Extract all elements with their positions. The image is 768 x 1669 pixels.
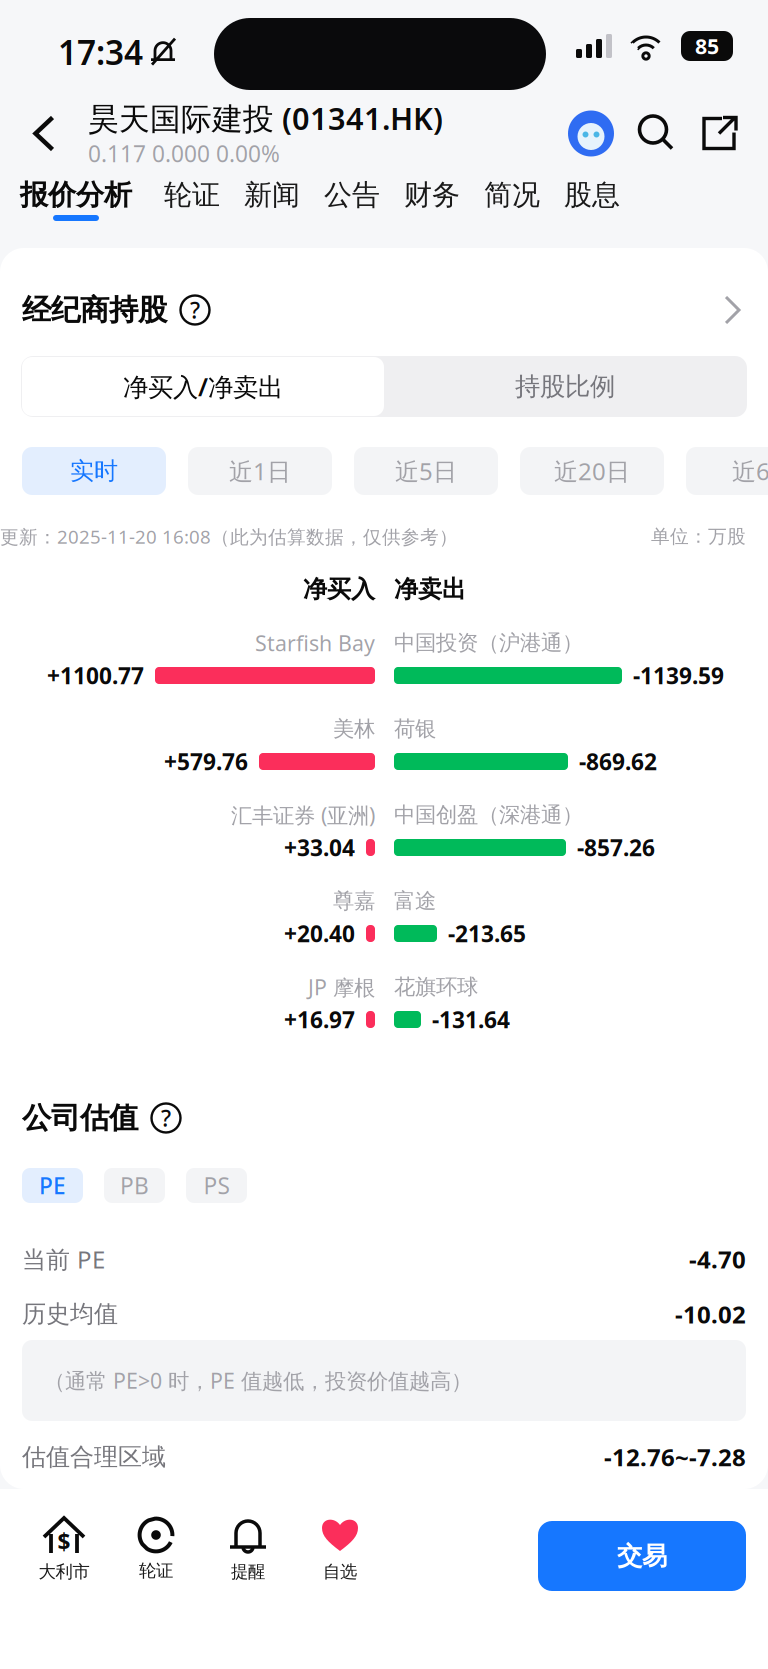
button[interactable]: 持股比例 — [384, 357, 746, 416]
button[interactable]: 近20日 — [520, 447, 664, 495]
staticText: 当前 PE — [22, 1243, 105, 1275]
button[interactable]: 提醒 — [202, 1497, 294, 1615]
staticText: 股息 — [564, 178, 620, 212]
staticText: 昊天国际建投 (01341.HK) — [88, 98, 443, 138]
staticText: 公司估值 — [22, 1100, 138, 1136]
button[interactable]: 轮证 — [152, 175, 232, 215]
button[interactable]: Share — [700, 113, 740, 153]
button[interactable]: PE — [22, 1168, 83, 1203]
staticText: -4.70 — [689, 1243, 746, 1275]
button[interactable]: Back — [0, 92, 88, 175]
staticText: -869.62 — [579, 746, 657, 776]
staticText: 经纪商持股 — [22, 292, 167, 328]
staticText: ? — [161, 1103, 171, 1133]
staticText: +16.97 — [284, 1004, 355, 1034]
button[interactable]: More — [723, 295, 742, 325]
staticText: 近5日 — [395, 455, 457, 487]
staticText: 新闻 — [244, 178, 300, 212]
staticText: 简况 — [484, 178, 540, 212]
staticText: 荷银 — [394, 716, 436, 742]
staticText: 自选 — [323, 1561, 357, 1582]
staticText: PS — [203, 1170, 229, 1200]
staticText: 0.117 0.000 0.00% — [88, 138, 280, 169]
staticText: 公告 — [324, 178, 380, 212]
button[interactable]: Search — [636, 113, 676, 153]
staticText: 花旗环球 — [394, 974, 478, 1000]
staticText: -1139.59 — [633, 660, 724, 690]
staticText: Starfish Bay — [255, 629, 375, 657]
staticText: 净买入/净卖出 — [123, 370, 283, 403]
staticText: 报价分析 — [20, 178, 132, 212]
button[interactable]: PB — [104, 1168, 165, 1203]
button[interactable]: AI assistant — [568, 110, 614, 156]
staticText: 中国投资（沪港通） — [394, 630, 583, 656]
staticText: ? — [190, 295, 200, 325]
button[interactable]: 新闻 — [232, 175, 312, 215]
staticText: 轮证 — [164, 178, 220, 212]
staticText: 交易 — [617, 1540, 667, 1571]
staticText: 历史均值 — [22, 1299, 118, 1329]
staticText: 净卖出 — [394, 574, 466, 604]
staticText: 近60 — [732, 455, 768, 487]
staticText: 提醒 — [231, 1561, 265, 1582]
staticText: 美林 — [333, 716, 375, 742]
staticText: 估值合理区域 — [22, 1442, 166, 1472]
button[interactable]: 实时 — [22, 447, 166, 495]
staticText: -10.02 — [675, 1298, 746, 1330]
staticText: 财务 — [404, 178, 460, 212]
button[interactable]: 财务 — [392, 175, 472, 215]
button[interactable]: 股息 — [552, 175, 632, 215]
button[interactable]: $ — [18, 1497, 110, 1615]
staticText: JP 摩根 — [308, 973, 375, 1001]
staticText: 持股比例 — [515, 371, 615, 402]
button[interactable]: 近1日 — [188, 447, 332, 495]
staticText: -857.26 — [577, 832, 655, 862]
staticText: PE — [39, 1170, 66, 1200]
button[interactable]: 近60 — [686, 447, 768, 495]
staticText: +579.76 — [164, 746, 248, 776]
staticText: PB — [120, 1170, 149, 1200]
staticText: 近1日 — [229, 455, 291, 487]
staticText: +33.04 — [284, 832, 355, 862]
staticText: 富途 — [394, 888, 436, 914]
staticText: -12.76~-7.28 — [604, 1441, 746, 1473]
button[interactable]: 交易 — [538, 1521, 746, 1591]
button[interactable]: 自选 — [294, 1497, 386, 1615]
staticText: 17:34 — [58, 30, 143, 74]
staticText: 单位：万股 — [651, 525, 746, 548]
staticText: 大利市 — [38, 1561, 89, 1582]
staticText: 中国创盈（深港通） — [394, 802, 583, 828]
staticText: 净买入 — [303, 574, 375, 604]
button[interactable]: 轮证 — [110, 1497, 202, 1615]
staticText: -131.64 — [432, 1004, 510, 1034]
staticText: （通常 PE>0 时，PE 值越低，投资价值越高） — [44, 1366, 472, 1395]
staticText: 汇丰证券 (亚洲) — [231, 801, 375, 829]
staticText: 85 — [695, 32, 719, 60]
staticText: +20.40 — [284, 918, 355, 948]
staticText: 近20日 — [554, 455, 630, 487]
staticText: 实时 — [70, 456, 118, 486]
button[interactable]: 公告 — [312, 175, 392, 215]
button[interactable]: 净买入/净卖出 — [22, 357, 384, 416]
staticText: 轮证 — [139, 1560, 173, 1581]
staticText: $ — [57, 1526, 70, 1556]
button[interactable]: PS — [186, 1168, 247, 1203]
staticText: +1100.77 — [47, 660, 144, 690]
staticText: 尊嘉 — [333, 888, 375, 914]
staticText: -213.65 — [448, 918, 526, 948]
button[interactable]: 简况 — [472, 175, 552, 215]
button[interactable]: 近5日 — [354, 447, 498, 495]
button[interactable]: 报价分析 — [0, 175, 152, 248]
staticText: 更新：2025-11-20 16:08（此为估算数据，仅供参考） — [0, 524, 458, 549]
